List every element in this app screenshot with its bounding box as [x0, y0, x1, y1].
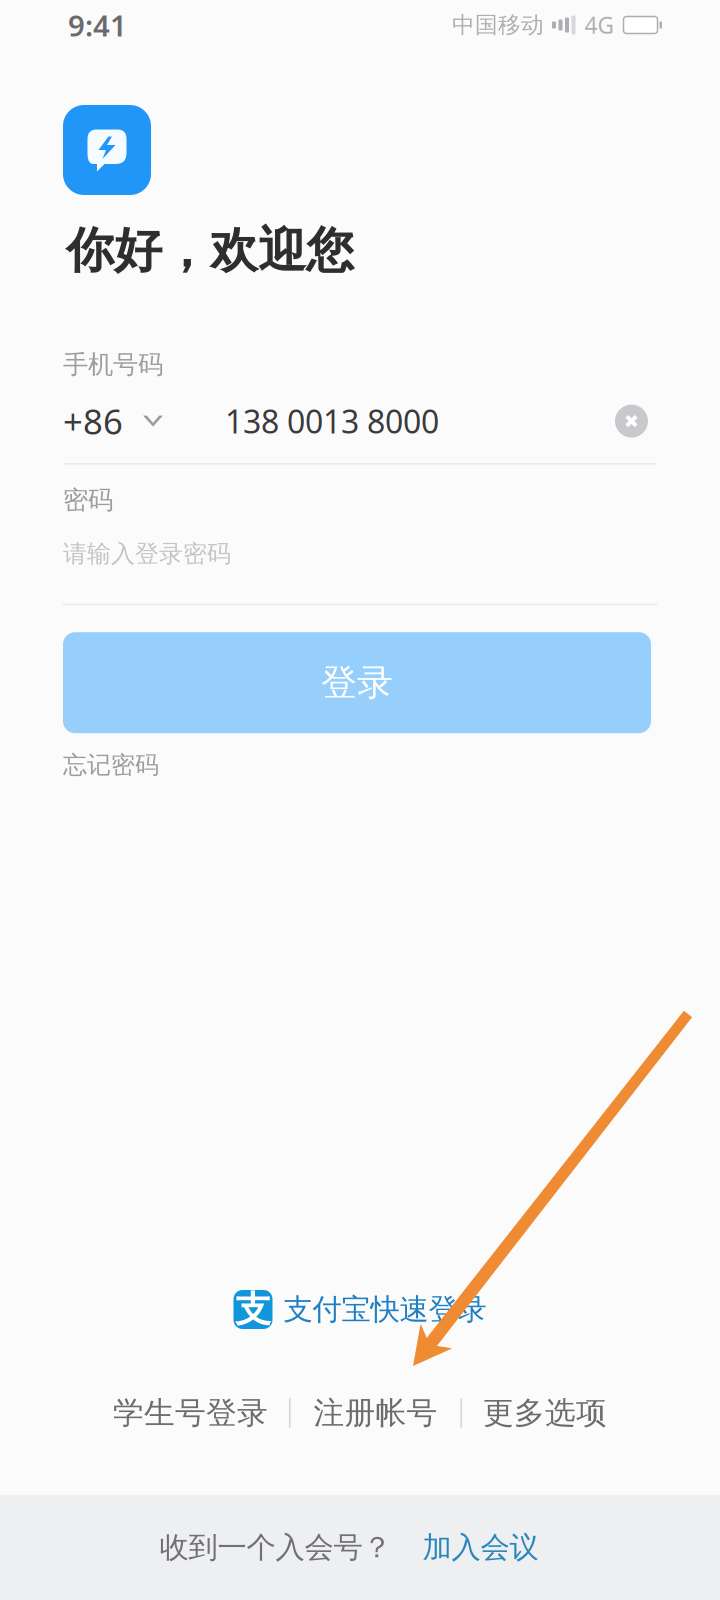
staticText: 密码	[63, 485, 113, 516]
staticText: 中国移动	[452, 11, 544, 39]
staticText: 138 0013 8000	[225, 400, 439, 442]
button[interactable]: 清除手机号码	[615, 405, 648, 438]
staticText: 收到一个入会号？	[159, 1529, 391, 1565]
staticText: 你好，欢迎您	[66, 221, 354, 280]
button[interactable]: 选择国家或地区代码	[63, 393, 163, 449]
staticText: 支	[235, 1287, 271, 1332]
staticText: 支付宝快速登录	[283, 1291, 486, 1327]
staticText: 登录	[321, 661, 393, 705]
staticText: 手机号码	[63, 349, 163, 380]
staticText: 学生号登录	[113, 1394, 268, 1432]
staticText: 请输入登录密码	[63, 539, 231, 568]
button[interactable]: 学生号登录	[92, 1387, 289, 1439]
button[interactable]: 更多选项	[462, 1387, 628, 1439]
staticText: 更多选项	[483, 1394, 607, 1432]
staticText: 注册帐号	[313, 1394, 437, 1432]
staticText: 9:41	[68, 5, 127, 44]
button[interactable]: 加入会议	[422, 1529, 538, 1565]
button[interactable]: 注册帐号	[290, 1387, 460, 1439]
staticText: +86	[63, 398, 123, 444]
button[interactable]: 忘记密码	[63, 750, 159, 780]
staticText: 4G	[584, 10, 614, 40]
button[interactable]: 登录	[63, 632, 651, 733]
staticText: 忘记密码	[63, 750, 159, 780]
button[interactable]: 支	[233, 1290, 486, 1329]
staticText: 加入会议	[422, 1529, 538, 1565]
